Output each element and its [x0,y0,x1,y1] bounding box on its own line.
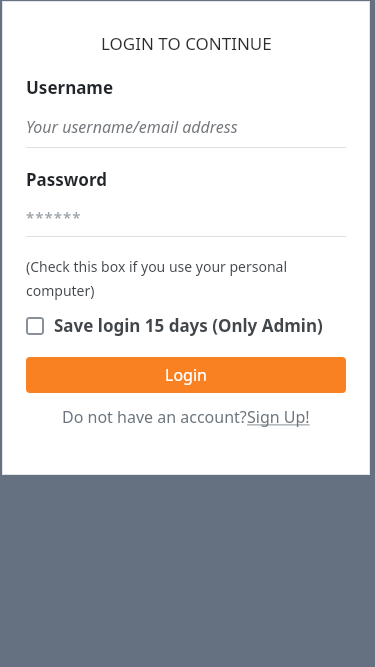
button[interactable]: Login [26,357,346,393]
staticText: LOGIN TO CONTINUE [101,32,272,55]
staticText: Login [165,364,207,386]
button[interactable]: ****** [26,207,346,237]
staticText: Do not have an account? [62,406,247,428]
staticText: ****** [26,207,82,227]
button[interactable]: Your username/email address [26,116,346,148]
staticText: Your username/email address [26,116,238,138]
staticText: Sign Up! [247,406,310,428]
staticText: Password [26,168,107,191]
staticText: Username [26,76,114,99]
button[interactable]: Sign Up! [247,406,310,428]
staticText: Save login 15 days (Only Admin) [54,314,323,337]
button[interactable]: Save login 15 days (Only Admin) [26,314,346,337]
staticText: (Check this box if you use your personal… [26,257,290,300]
